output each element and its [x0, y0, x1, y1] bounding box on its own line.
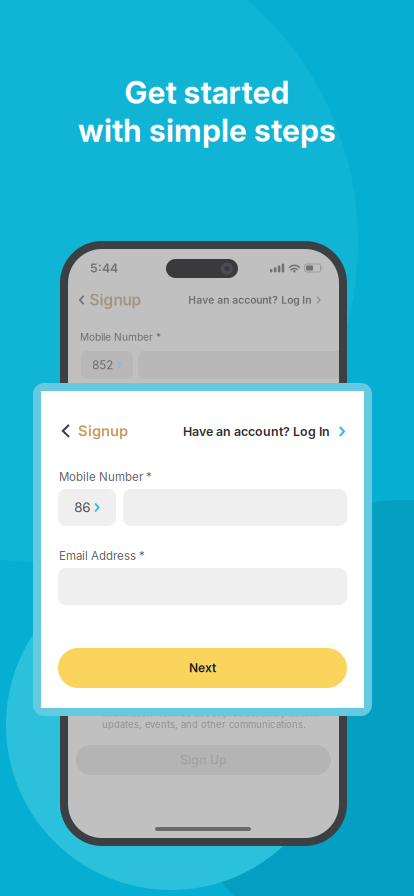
- staticText: Mobile Number *: [59, 470, 152, 484]
- staticText: 5:44: [90, 261, 118, 275]
- staticText: Tick this box if you would like to recei…: [102, 696, 318, 730]
- button[interactable]: Have an account? Log In: [179, 419, 349, 444]
- button[interactable]: Signup: [58, 417, 132, 445]
- staticText: Next: [189, 661, 216, 675]
- staticText: 852: [92, 358, 113, 372]
- staticText: with simple steps: [78, 112, 336, 149]
- staticText: Signup: [90, 291, 142, 309]
- staticText: Signup: [78, 422, 128, 440]
- staticText: Mobile Number *: [80, 331, 161, 343]
- staticText: Have an account? Log In: [183, 424, 330, 439]
- button[interactable]: Next: [58, 648, 347, 688]
- staticText: Get started: [124, 74, 289, 111]
- staticText: 86: [74, 499, 90, 515]
- staticText: Sign Up: [180, 752, 227, 768]
- staticText: Email Address *: [59, 549, 145, 563]
- staticText: Have an account? Log In: [188, 294, 311, 306]
- button[interactable]: 86: [58, 489, 116, 526]
